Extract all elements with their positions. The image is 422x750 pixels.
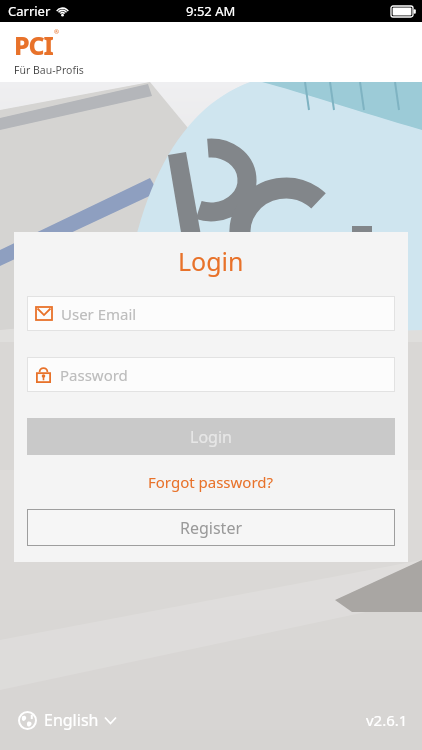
staticText: PCI <box>14 28 53 62</box>
staticText: Login <box>178 244 244 278</box>
button[interactable]: User Email <box>27 296 395 331</box>
staticText: Register <box>180 517 243 539</box>
staticText: English <box>44 709 99 731</box>
staticText: v2.6.1 <box>366 710 408 730</box>
staticText: Für Bau-Profis <box>14 63 84 77</box>
button[interactable]: Change language <box>14 705 120 735</box>
button[interactable]: Login <box>27 418 395 455</box>
other: Change language <box>18 711 37 730</box>
staticText: Forgot password? <box>148 472 274 492</box>
button[interactable]: Forgot password? <box>27 472 395 492</box>
button[interactable]: Register <box>27 509 395 546</box>
button[interactable]: Password <box>27 357 395 392</box>
staticText: Carrier <box>8 2 51 20</box>
staticText: Login <box>190 426 232 448</box>
staticText: User Email <box>61 304 137 324</box>
staticText: ® <box>54 28 59 36</box>
staticText: 9:52 AM <box>186 2 236 20</box>
staticText: Password <box>60 365 128 385</box>
